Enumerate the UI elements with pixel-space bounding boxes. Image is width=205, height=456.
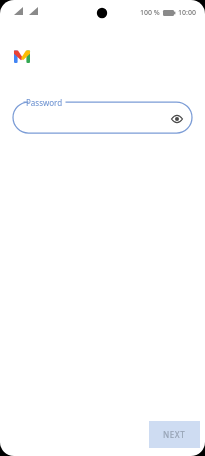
button[interactable]: Next bbox=[149, 421, 200, 448]
button[interactable]: Show password bbox=[168, 111, 186, 127]
button[interactable]: Password bbox=[13, 102, 192, 133]
